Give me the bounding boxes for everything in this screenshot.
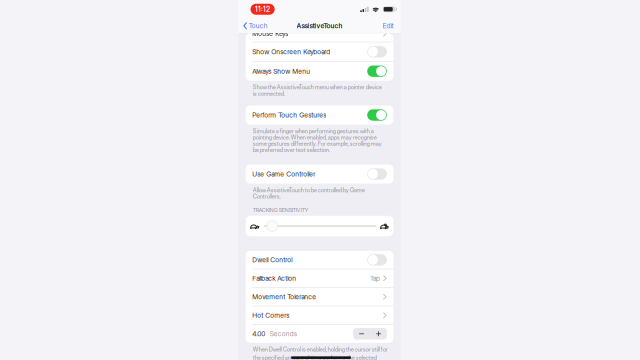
staticText: Always Show Menu xyxy=(252,67,310,75)
button[interactable]: Decrease xyxy=(353,328,370,340)
staticText: Dwell Control xyxy=(252,256,292,264)
button[interactable]: Always Show Menu xyxy=(246,62,393,81)
staticText: 11:12 xyxy=(255,5,270,13)
button[interactable]: Fallback Action xyxy=(246,269,393,287)
staticText: Show Onscreen Keyboard xyxy=(252,48,330,56)
button[interactable]: Edit xyxy=(375,19,401,33)
staticText: Show the AssistiveTouch menu when a poin… xyxy=(253,84,382,97)
staticText: the specified amount of time performs th… xyxy=(253,354,377,360)
button[interactable]: Dwell Control xyxy=(246,251,393,269)
staticText: TRACKING SENSITIVITY xyxy=(253,207,308,213)
button[interactable]: Use Game Controller xyxy=(246,164,393,183)
button[interactable]: Movement Tolerance xyxy=(246,288,393,306)
staticText: When Dwell Control is enabled, holding t… xyxy=(253,346,388,353)
button[interactable]: Mouse Keys xyxy=(246,33,393,42)
staticText: AssistiveTouch xyxy=(296,22,342,30)
button[interactable]: Increase xyxy=(370,328,387,340)
staticText: Touch xyxy=(249,22,268,30)
staticText: Hot Corners xyxy=(252,311,289,319)
button[interactable]: Perform Touch Gestures xyxy=(246,105,393,124)
staticText: Movement Tolerance xyxy=(252,293,316,301)
staticText: 4.00 xyxy=(252,330,265,338)
staticText: Simulate a finger when performing gestur… xyxy=(253,127,382,153)
staticText: Tap xyxy=(370,274,380,282)
staticText: Edit xyxy=(382,22,393,30)
staticText: Perform Touch Gestures xyxy=(252,111,326,119)
staticText: Mouse Keys xyxy=(252,29,288,38)
staticText: Use Game Controller xyxy=(252,170,315,178)
button[interactable]: Touch xyxy=(238,19,273,33)
staticText: Allow AssistiveTouch to be controlled by… xyxy=(253,186,365,200)
staticText: Seconds xyxy=(270,330,297,338)
button[interactable]: Hot Corners xyxy=(246,306,393,324)
staticText: Fallback Action xyxy=(252,274,296,282)
button[interactable]: Show Onscreen Keyboard xyxy=(246,42,393,61)
